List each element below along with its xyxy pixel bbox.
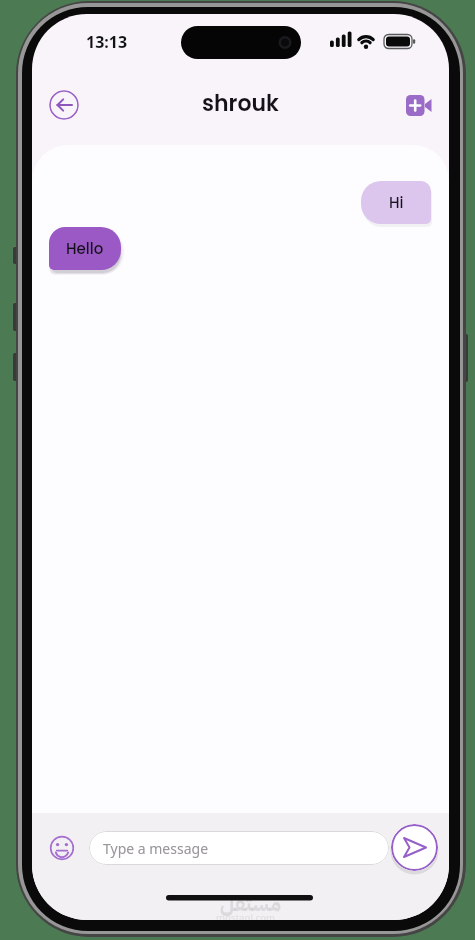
staticText: Hi [389,192,404,213]
button[interactable] [48,834,76,862]
staticText: mostaql.com [216,911,275,920]
button[interactable] [391,824,438,871]
staticText: Type a message [103,839,209,858]
staticText: shrouk [202,88,279,119]
staticText: مستقل [220,888,281,918]
button[interactable] [49,90,79,120]
button[interactable]: Type a message [89,831,389,865]
staticText: Hello [66,238,104,259]
button[interactable] [402,92,436,120]
staticText: 13:13 [86,31,128,53]
